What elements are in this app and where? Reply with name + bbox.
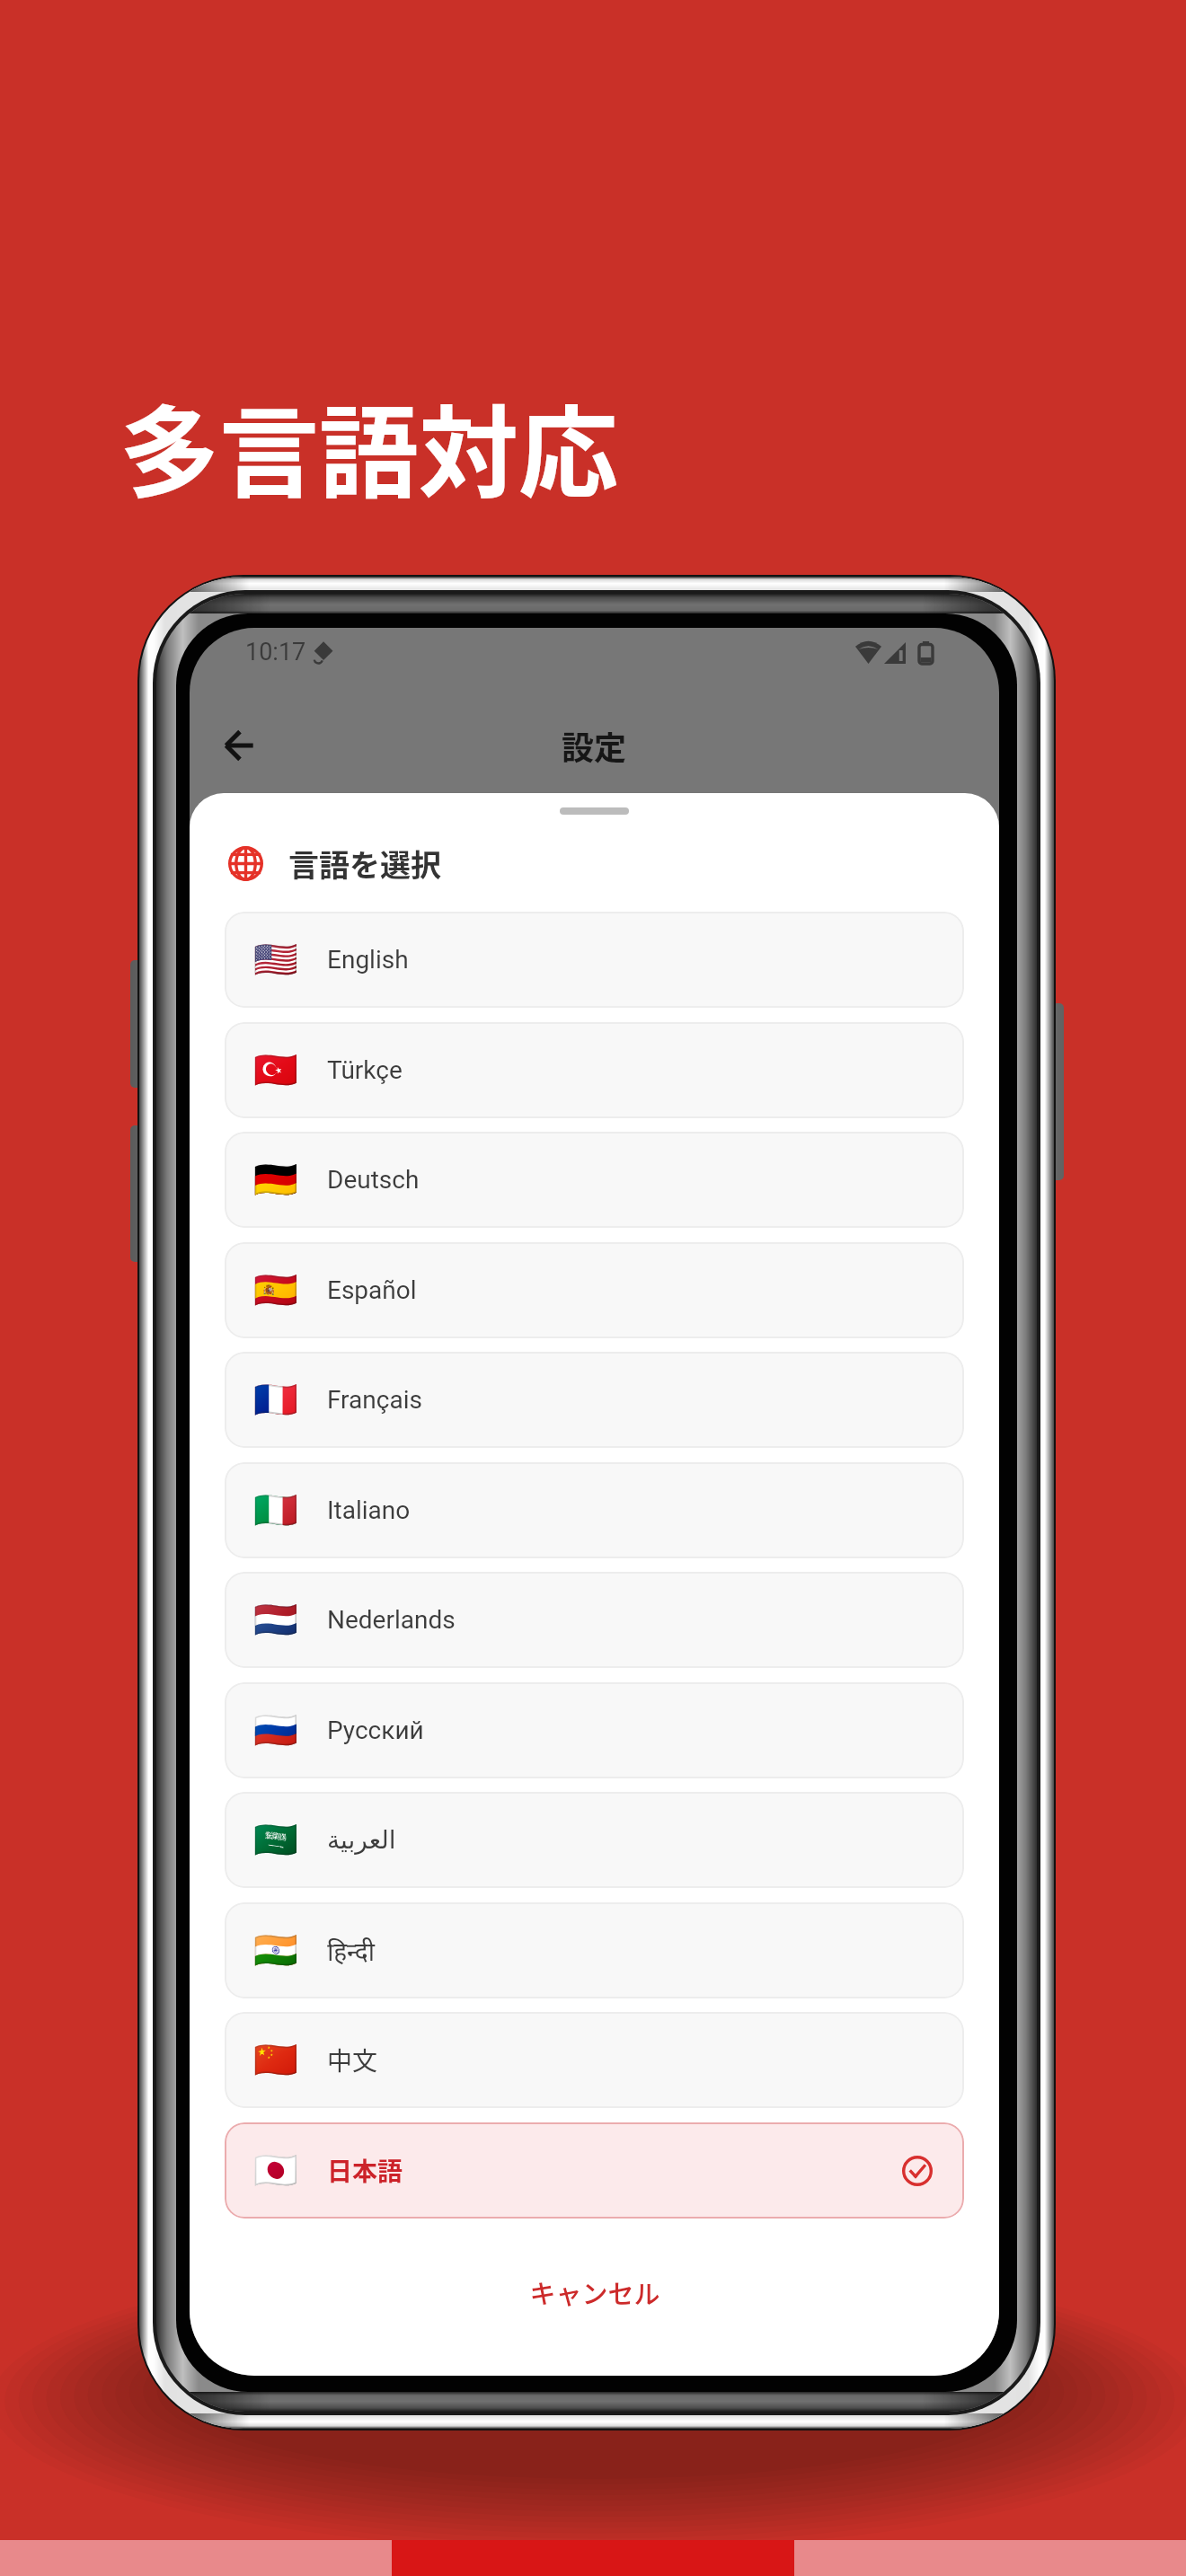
staticText: Français: [327, 1385, 422, 1415]
button[interactable]: 🇳🇱: [225, 1572, 964, 1668]
staticText: 🇯🇵: [253, 2149, 298, 2192]
staticText: 🇮🇳: [253, 1929, 298, 1972]
button[interactable]: 🇷🇺: [225, 1682, 964, 1778]
button[interactable]: キャンセル: [190, 2219, 999, 2376]
staticText: हिन्दी: [327, 1934, 375, 1968]
staticText: キャンセル: [529, 2273, 660, 2311]
staticText: Deutsch: [327, 1165, 420, 1195]
staticText: 中文: [327, 2042, 378, 2078]
staticText: 10:17: [245, 638, 306, 666]
button[interactable]: 🇩🇪: [225, 1132, 964, 1228]
staticText: 日本語: [327, 2152, 403, 2189]
staticText: 🇹🇷: [253, 1049, 298, 1091]
staticText: 多言語対応: [119, 374, 619, 518]
button[interactable]: 🇮🇳: [225, 1902, 964, 1998]
staticText: Türkçe: [327, 1055, 403, 1085]
button[interactable]: 🇺🇸: [225, 912, 964, 1008]
staticText: Español: [327, 1275, 417, 1305]
staticText: 🇩🇪: [253, 1159, 298, 1201]
button[interactable]: 🇹🇷: [225, 1022, 964, 1118]
staticText: Italiano: [327, 1495, 411, 1525]
staticText: 言語を選択: [288, 842, 441, 886]
button[interactable]: 🇯🇵: [225, 2122, 964, 2219]
staticText: 🇺🇸: [253, 939, 298, 981]
button[interactable]: 🇪🇸: [225, 1242, 964, 1338]
button[interactable]: 🇮🇹: [225, 1462, 964, 1558]
staticText: 🇸🇦: [253, 1819, 298, 1861]
staticText: 🇨🇳: [253, 2039, 298, 2081]
staticText: Nederlands: [327, 1605, 456, 1635]
button[interactable]: 🇨🇳: [225, 2012, 964, 2108]
staticText: Русский: [327, 1716, 424, 1745]
staticText: 🇪🇸: [253, 1269, 298, 1311]
button[interactable]: 🇸🇦: [225, 1792, 964, 1888]
staticText: العربية: [327, 1825, 396, 1855]
staticText: 🇳🇱: [253, 1599, 298, 1641]
button[interactable]: 🇫🇷: [225, 1352, 964, 1448]
staticText: 🇫🇷: [253, 1379, 298, 1421]
button[interactable]: Back: [204, 710, 274, 781]
staticText: 🇷🇺: [253, 1709, 298, 1751]
staticText: 設定: [562, 722, 627, 769]
staticText: English: [327, 945, 409, 975]
staticText: 🇮🇹: [253, 1489, 298, 1531]
